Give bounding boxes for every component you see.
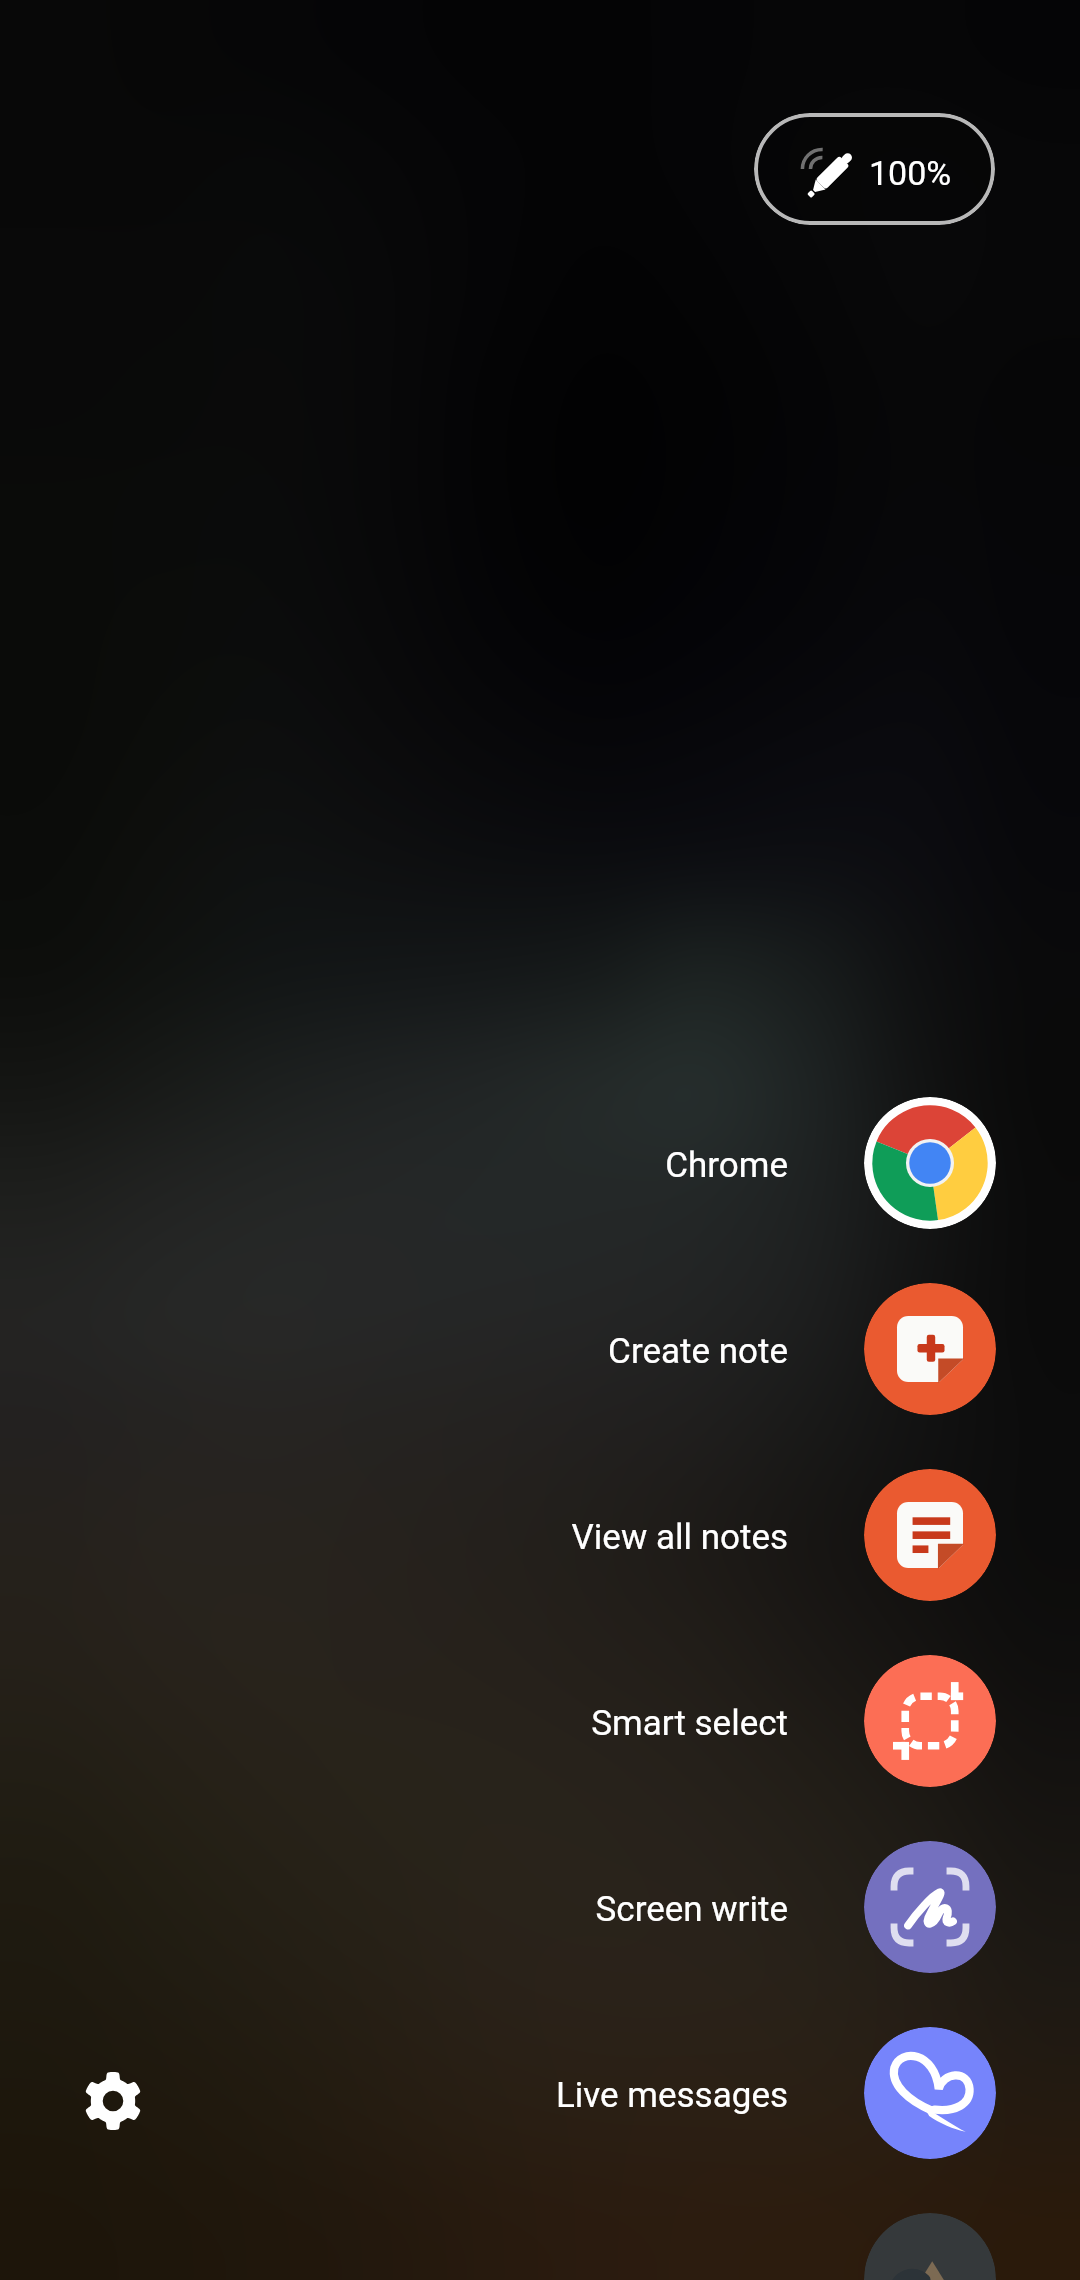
button[interactable]: Create note — [330, 1283, 996, 1415]
button[interactable]: Bixby Vision — [864, 2213, 996, 2280]
staticText: Create note — [608, 1331, 788, 1372]
button[interactable]: View all notes — [330, 1469, 996, 1601]
staticText: Live messages — [555, 2075, 788, 2116]
button[interactable]: Live messages — [330, 2027, 996, 2159]
button[interactable]: Smart select — [330, 1655, 996, 1787]
staticText: Screen write — [595, 1889, 788, 1930]
staticText: Chrome — [665, 1145, 788, 1186]
staticText: Smart select — [591, 1703, 788, 1744]
button[interactable]: Screen write — [330, 1841, 996, 1973]
button[interactable]: Chrome — [330, 1097, 996, 1229]
button[interactable]: S Pen battery 100 percent — [754, 113, 995, 225]
staticText: View all notes — [571, 1517, 788, 1558]
staticText: 100% — [869, 153, 952, 193]
button[interactable]: Settings — [53, 2041, 173, 2161]
